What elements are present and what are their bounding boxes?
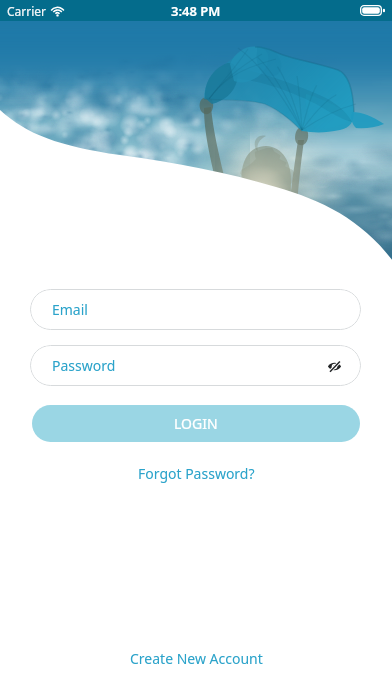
button[interactable]: Create New Account <box>120 643 273 674</box>
staticText: Carrier <box>7 3 47 19</box>
button[interactable]: Email <box>30 289 361 330</box>
button[interactable]: Password <box>30 345 361 386</box>
staticText: 3:48 PM <box>171 2 221 20</box>
button[interactable]: Forgot Password? <box>128 458 265 489</box>
staticText: Email <box>52 300 88 319</box>
button[interactable]: Show password <box>319 351 349 381</box>
staticText: LOGIN <box>174 414 218 433</box>
button[interactable]: LOGIN <box>32 405 360 442</box>
staticText: Password <box>52 356 116 375</box>
